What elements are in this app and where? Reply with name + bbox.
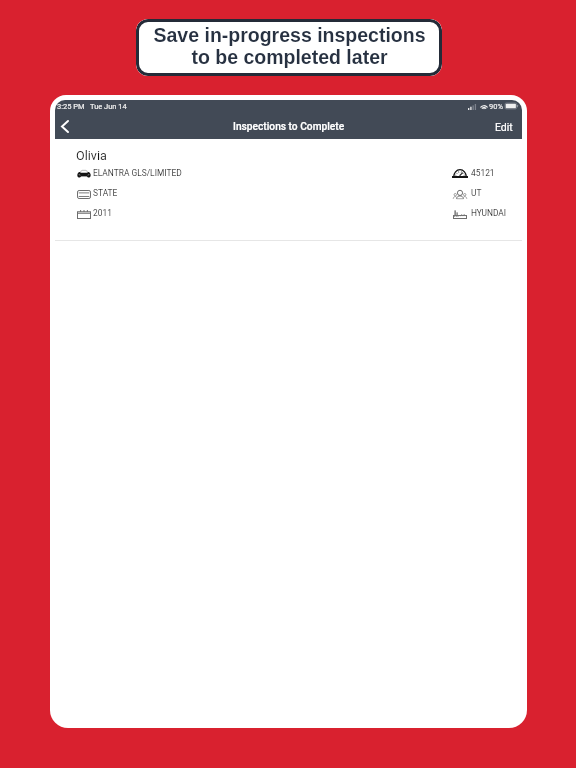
staticText: Tue Jun 14 [90,102,127,111]
staticText: 3:25 PM [57,102,85,111]
staticText: HYUNDAI [471,208,507,218]
staticText: 2011 [93,208,112,218]
staticText: Olivia [76,148,107,163]
button[interactable]: Olivia [55,139,522,241]
staticText: STATE [93,188,118,198]
staticText: Inspections to Complete [233,121,345,133]
staticText: Save in-progress inspections to be compl… [153,24,426,69]
staticText: UT [471,188,482,198]
staticText: Edit [495,121,513,133]
staticText: 90% [489,102,503,111]
button[interactable]: Back [55,114,77,139]
staticText: ELANTRA GLS/LIMITED [93,168,182,178]
button[interactable]: Edit [486,116,522,138]
staticText: 45121 [471,168,495,178]
